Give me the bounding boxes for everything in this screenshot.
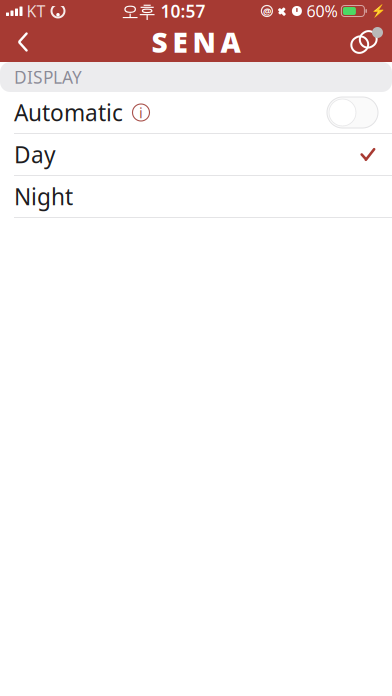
staticText: KT <box>26 0 45 22</box>
staticText: Day <box>14 139 56 169</box>
button[interactable]: Connection status <box>336 22 392 62</box>
staticText: 60% <box>306 0 337 22</box>
button[interactable]: Back <box>0 22 46 62</box>
staticText: 오후 10:57 <box>121 0 205 22</box>
staticText: Night <box>14 181 73 211</box>
button[interactable]: Night <box>0 176 392 217</box>
staticText: Automatic <box>14 97 123 127</box>
staticText: @ <box>263 5 271 17</box>
button[interactable]: Day <box>0 134 392 175</box>
staticText: DISPLAY <box>14 65 82 88</box>
staticText: ⚡ <box>371 4 386 18</box>
button[interactable]: Automatic <box>0 92 392 133</box>
staticText: SENA <box>151 23 240 61</box>
staticText: i <box>139 103 143 122</box>
